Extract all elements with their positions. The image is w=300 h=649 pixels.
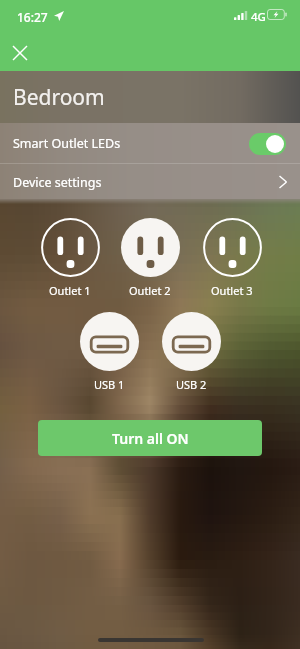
staticText: Outlet 2 — [129, 283, 171, 298]
staticText: Bedroom — [13, 83, 105, 112]
staticText: Smart Outlet LEDs — [13, 135, 121, 152]
button[interactable]: Smart Outlet LEDs — [0, 124, 300, 163]
button[interactable]: USB 1 — [76, 312, 142, 394]
button[interactable]: Outlet 1 — [37, 218, 103, 300]
staticText: Turn all ON — [112, 429, 189, 448]
button[interactable]: Turn all ON — [38, 420, 262, 456]
button[interactable]: Close — [6, 39, 33, 66]
button[interactable]: Outlet 2 — [117, 218, 183, 300]
staticText: Device settings — [13, 174, 102, 191]
other: Smart Outlet LEDs toggle — [249, 133, 286, 155]
button[interactable]: Device settings — [0, 164, 300, 200]
staticText: 4G — [251, 9, 266, 25]
button[interactable]: USB 2 — [158, 312, 224, 394]
staticText: Outlet 1 — [49, 283, 91, 298]
staticText: 16:27 — [17, 9, 48, 25]
staticText: Outlet 3 — [211, 283, 253, 298]
staticText: USB 1 — [94, 377, 125, 392]
button[interactable]: Outlet 3 — [199, 218, 265, 300]
staticText: USB 2 — [176, 377, 207, 392]
